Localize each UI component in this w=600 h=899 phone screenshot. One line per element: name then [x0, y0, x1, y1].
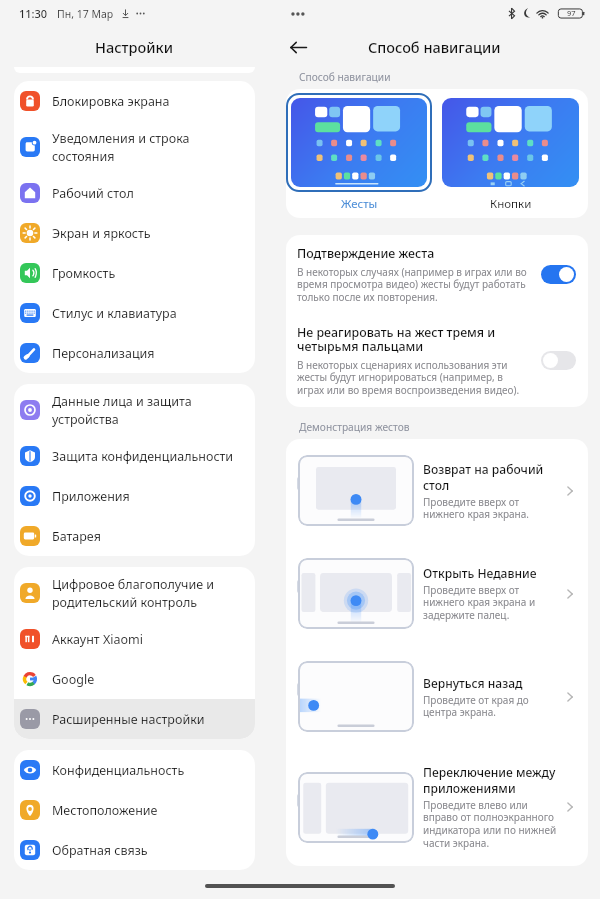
staticText: Не реагировать на жест тремя и четырьмя … [297, 324, 532, 355]
staticText: Рабочий стол [52, 185, 245, 202]
staticText: Открыть Недавние [423, 565, 537, 581]
staticText: Громкость [52, 265, 245, 282]
button[interactable]: Обратная связь [14, 830, 255, 870]
button[interactable]: Батарея [14, 516, 255, 556]
staticText: Цифровое благополучие и родительский кон… [52, 576, 245, 610]
staticText: Возврат на рабочий стол [423, 461, 560, 493]
button[interactable]: Данные лица и защита устройства [14, 384, 255, 436]
staticText: Персонализация [52, 345, 245, 362]
staticText: Обратная связь [52, 842, 245, 859]
staticText: Аккаунт Xiaomi [52, 631, 245, 648]
staticText: Пн, 17 Мар [57, 7, 114, 21]
staticText: Батарея [52, 528, 245, 545]
staticText: Проведите влево или вправо от полноэкран… [423, 798, 560, 850]
staticText: Конфиденциальность [52, 762, 245, 779]
button[interactable]: Переключение между приложениями [286, 748, 588, 866]
staticText: Местоположение [52, 802, 245, 819]
button[interactable]: Подтверждение жеста [286, 235, 588, 314]
staticText: Стилус и клавиатура [52, 305, 245, 322]
button[interactable]: Рабочий стол [14, 173, 255, 213]
staticText: Проведите вверх от нижнего края экрана и… [423, 583, 560, 622]
button[interactable]: Приложения [14, 476, 255, 516]
staticText: В некоторых случаях (например в играх ил… [297, 265, 532, 304]
button[interactable]: Блокировка экрана [14, 81, 255, 121]
button[interactable]: Вернуться назад [286, 645, 588, 748]
staticText: Google [52, 671, 245, 688]
staticText: Проведите вверх от нижнего края экрана. [423, 495, 560, 521]
staticText: 11:30 [19, 6, 48, 21]
button[interactable]: Аккаунт Xiaomi [14, 619, 255, 659]
staticText: Вернуться назад [423, 675, 523, 691]
staticText: Приложения [52, 488, 245, 505]
staticText: Жесты [341, 196, 378, 212]
staticText: Демонстрация жестов [299, 420, 410, 434]
staticText: Настройки [95, 37, 174, 57]
button[interactable]: Экран и яркость [14, 213, 255, 253]
button[interactable] [286, 93, 432, 192]
button[interactable]: Громкость [14, 253, 255, 293]
button[interactable] [437, 93, 584, 192]
staticText: Подтверждение жеста [297, 245, 435, 262]
staticText: Расширенные настройки [52, 711, 245, 728]
button[interactable]: Back [283, 32, 313, 62]
button[interactable]: Конфиденциальность [14, 750, 255, 790]
button[interactable]: Персонализация [14, 333, 255, 373]
staticText: Способ навигации [299, 70, 391, 84]
button[interactable]: Цифровое благополучие и родительский кон… [14, 567, 255, 619]
staticText: Блокировка экрана [52, 93, 245, 110]
staticText: Способ навигации [368, 37, 501, 57]
staticText: Данные лица и защита устройства [52, 393, 245, 427]
button[interactable]: Местоположение [14, 790, 255, 830]
button[interactable]: Защита конфиденциальности [14, 436, 255, 476]
button[interactable]: Google [14, 659, 255, 699]
button[interactable]: Уведомления и строка состояния [14, 121, 255, 173]
button[interactable]: Открыть Недавние [286, 542, 588, 645]
button[interactable]: Стилус и клавиатура [14, 293, 255, 333]
staticText: Кнопки [490, 196, 532, 212]
staticText: Экран и яркость [52, 225, 245, 242]
staticText: В некоторых сценариях использования эти … [297, 358, 532, 397]
button[interactable]: Не реагировать на жест тремя и четырьмя … [286, 314, 588, 407]
staticText: 97 [567, 8, 576, 18]
staticText: Защита конфиденциальности [52, 448, 245, 465]
button[interactable]: Возврат на рабочий стол [286, 439, 588, 542]
staticText: Уведомления и строка состояния [52, 130, 245, 164]
staticText: Проведите от края до центра экрана. [423, 693, 560, 719]
staticText: Переключение между приложениями [423, 764, 560, 796]
button[interactable]: Расширенные настройки [14, 699, 255, 739]
